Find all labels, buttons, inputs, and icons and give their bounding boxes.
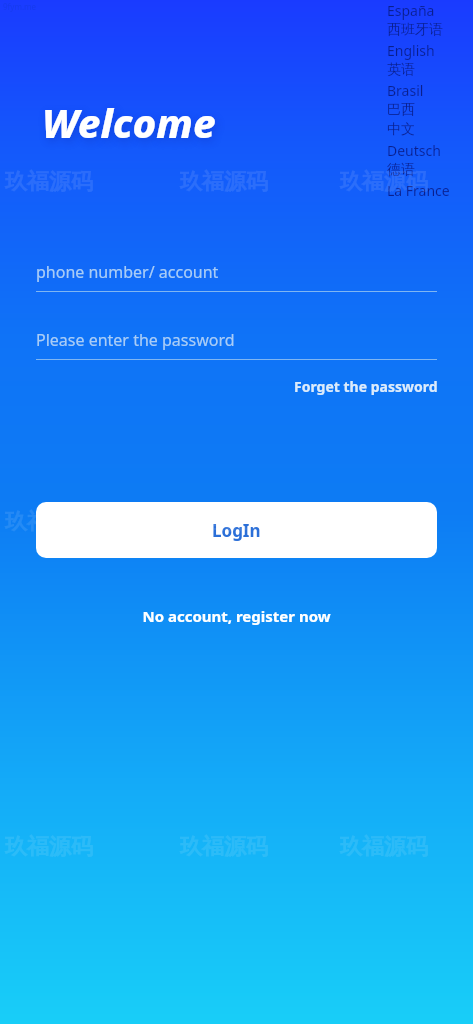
button[interactable]: La France (387, 180, 471, 200)
staticText: 西班牙语 (387, 21, 443, 39)
staticText: La France (387, 181, 450, 200)
button[interactable]: phone number/ account (36, 253, 437, 292)
staticText: 玖福源码 (180, 168, 268, 196)
button[interactable]: Forget the password (292, 371, 440, 402)
button[interactable]: No account, register now (132, 601, 341, 631)
staticText: Deutsch (387, 141, 441, 160)
staticText: Brasil (387, 81, 424, 100)
staticText: 德语 (387, 161, 415, 179)
staticText: 玖福源码 (5, 508, 93, 536)
button[interactable]: English (387, 40, 471, 60)
button[interactable]: España (387, 0, 471, 20)
button[interactable]: 中文 (387, 120, 471, 140)
staticText: 玖福源码 (5, 833, 93, 861)
button[interactable]: 英语 (387, 60, 471, 80)
button[interactable]: Please enter the password (36, 321, 437, 360)
staticText: 玖福源码 (5, 168, 93, 196)
staticText: 巴西 (387, 101, 415, 119)
staticText: No account, register now (142, 606, 331, 626)
button[interactable]: 巴西 (387, 100, 471, 120)
staticText: Forget the password (294, 377, 438, 396)
button[interactable]: Brasil (387, 80, 471, 100)
staticText: phone number/ account (36, 261, 219, 283)
button[interactable]: 德语 (387, 160, 471, 180)
button[interactable]: Deutsch (387, 140, 471, 160)
staticText: 玖福源码 (340, 833, 428, 861)
staticText: 玖福源码 (180, 508, 268, 536)
staticText: English (387, 41, 435, 60)
staticText: 9fym.me (3, 1, 37, 12)
staticText: Welcome (42, 95, 216, 149)
staticText: 英语 (387, 61, 415, 79)
staticText: España (387, 1, 435, 20)
button[interactable]: 西班牙语 (387, 20, 471, 40)
staticText: 中文 (387, 121, 415, 139)
staticText: LogIn (212, 519, 261, 542)
staticText: Please enter the password (36, 329, 235, 351)
staticText: 玖福源码 (180, 833, 268, 861)
staticText: 玖福源码 (340, 168, 428, 196)
button[interactable]: LogIn (36, 502, 437, 558)
